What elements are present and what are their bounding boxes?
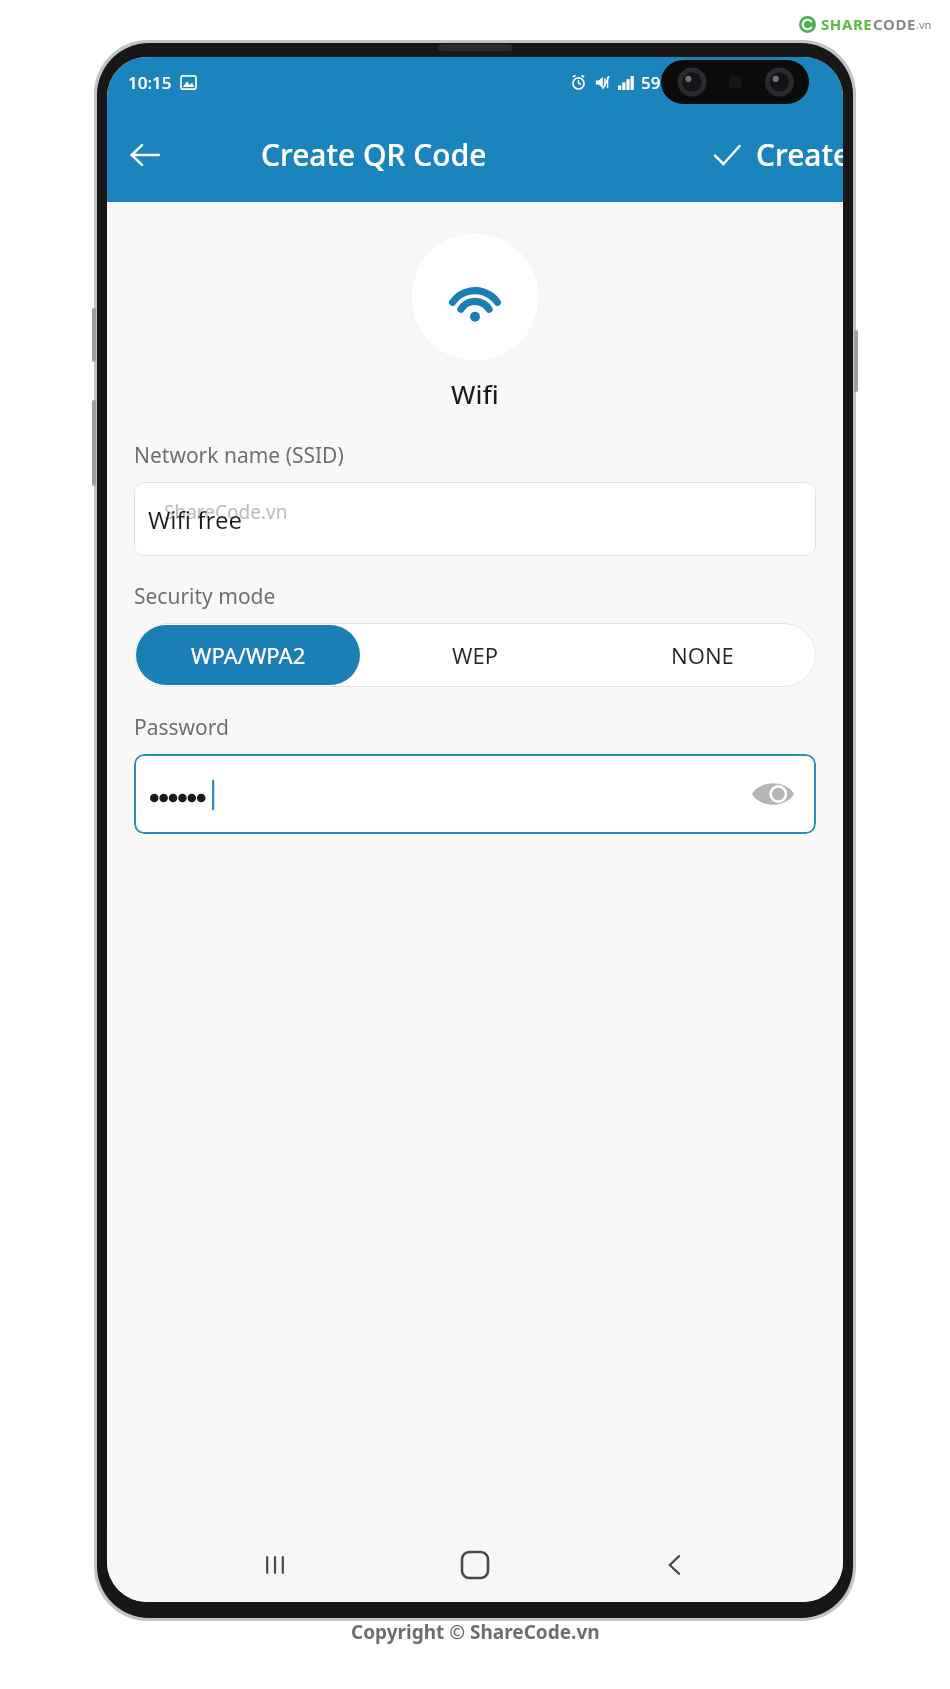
staticText: WPA/WPA2 — [191, 640, 306, 670]
button[interactable]: Show password — [134, 754, 816, 834]
staticText: WEP — [452, 640, 499, 670]
staticText: ShareCode.vn — [164, 499, 288, 525]
button[interactable]: WPA/WPA2 — [136, 625, 360, 685]
staticText: 59% — [641, 71, 675, 94]
button[interactable]: Back — [117, 127, 173, 183]
button[interactable]: Home — [443, 1533, 507, 1597]
staticText: .vn — [916, 17, 932, 32]
staticText: Copyright © ShareCode.vn — [351, 1619, 600, 1645]
button[interactable]: Back — [643, 1533, 707, 1597]
staticText: NONE — [671, 640, 734, 670]
staticText: Wifi free — [148, 503, 242, 536]
staticText: Network name (SSID) — [134, 441, 344, 470]
staticText: Create QR Code — [261, 134, 487, 175]
staticText: 10:15 — [128, 71, 172, 94]
staticText: CODE — [873, 14, 916, 34]
button[interactable]: ShareCode.vn — [134, 482, 816, 556]
button[interactable]: Show password — [746, 767, 800, 821]
button[interactable]: NONE — [591, 625, 814, 685]
staticText: Security mode — [134, 582, 276, 611]
button[interactable]: Create — [704, 128, 843, 181]
staticText: Wifi — [451, 376, 499, 411]
staticText: Password — [134, 713, 229, 742]
button[interactable]: Recent apps — [243, 1533, 307, 1597]
button[interactable]: WEP — [364, 625, 587, 685]
staticText: Create — [756, 134, 843, 175]
staticText: SHARE — [821, 14, 873, 34]
